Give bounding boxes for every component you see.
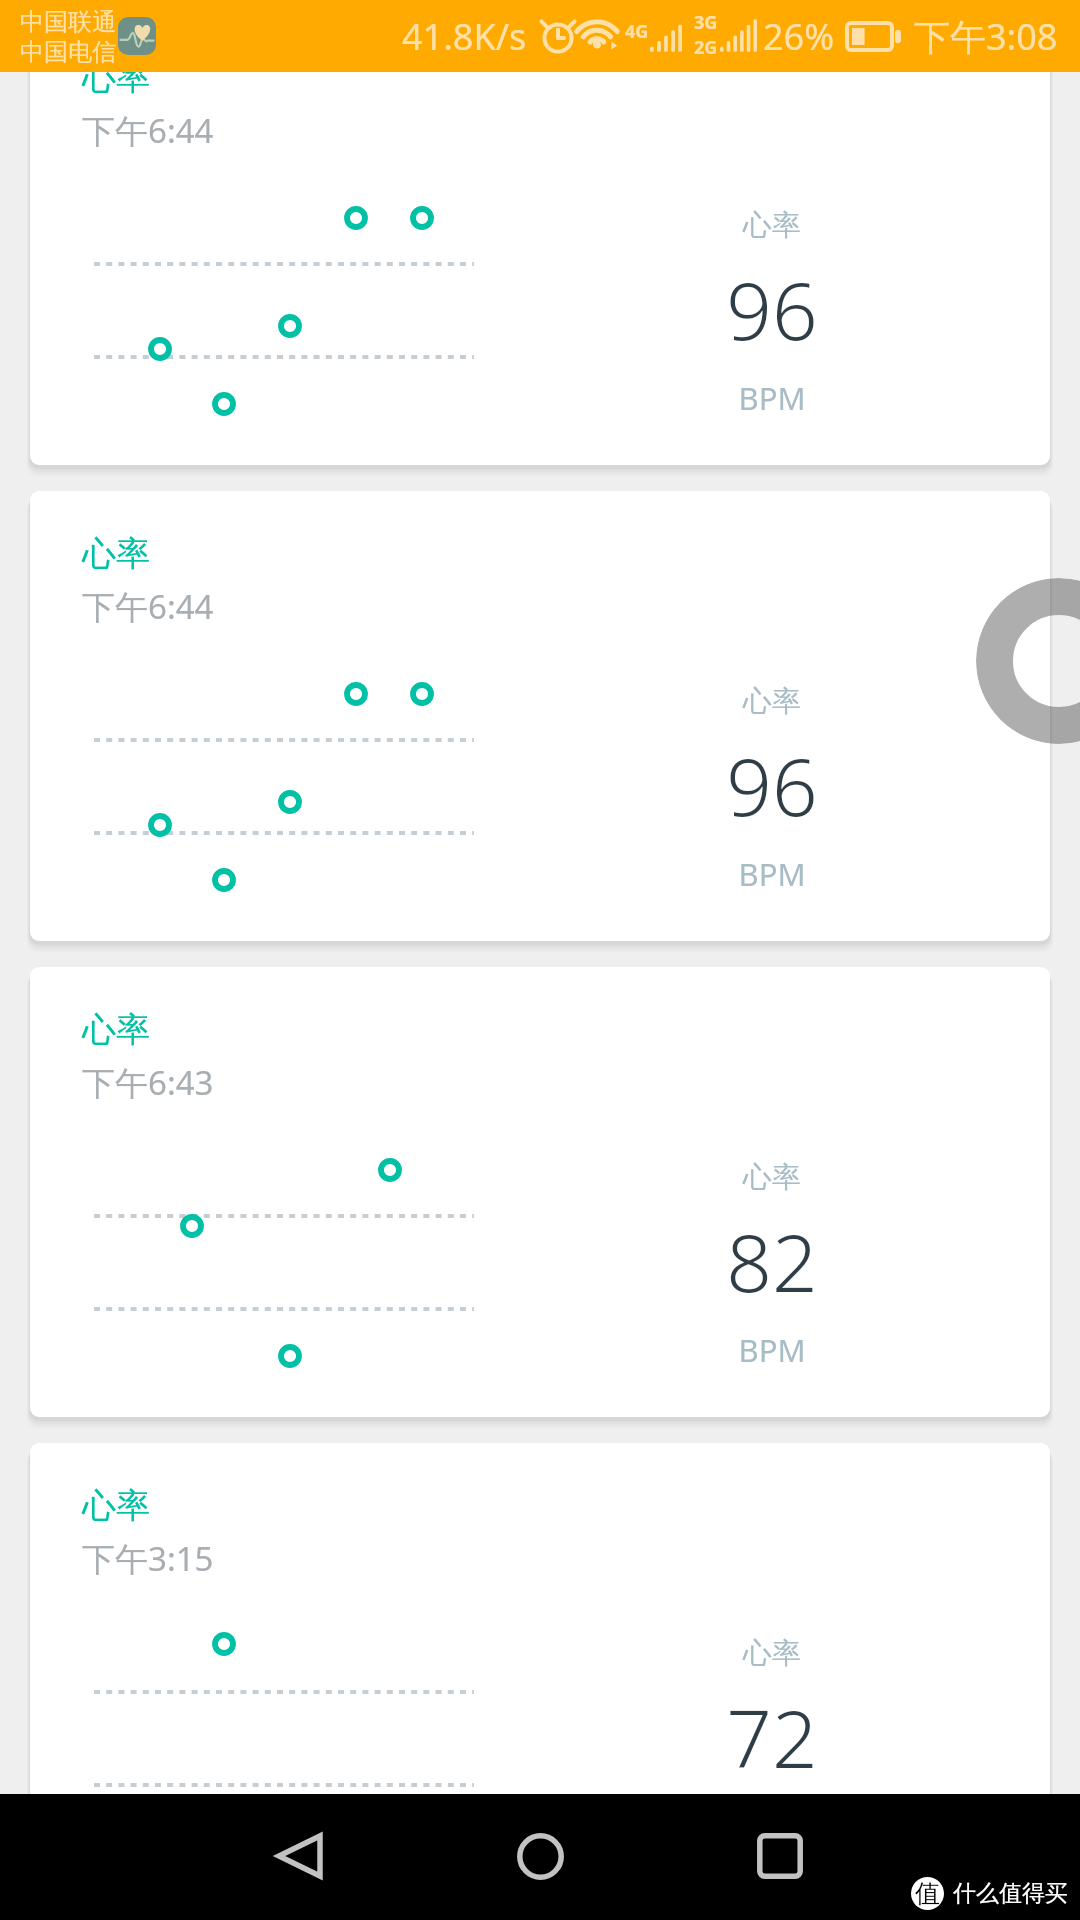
staticText: 3G bbox=[694, 10, 718, 35]
button[interactable]: Refresh bbox=[976, 578, 1080, 744]
staticText: 下午3:15 bbox=[82, 1536, 214, 1581]
staticText: BPM bbox=[572, 377, 972, 419]
staticText: 中国联通 bbox=[20, 7, 116, 37]
staticText: 41.8K/s bbox=[402, 12, 527, 61]
button[interactable]: 心率 bbox=[30, 1443, 1050, 1893]
staticText: 心率 bbox=[82, 56, 150, 99]
staticText: BPM bbox=[572, 1805, 972, 1847]
staticText: 心率 bbox=[572, 1635, 972, 1672]
button[interactable]: Recents bbox=[720, 1793, 840, 1919]
staticText: BPM bbox=[572, 1329, 972, 1371]
staticText: 中国电信 bbox=[20, 37, 116, 67]
staticText: 下午6:44 bbox=[82, 108, 214, 153]
button[interactable]: Home bbox=[480, 1793, 600, 1919]
staticText: 26% bbox=[763, 12, 835, 61]
staticText: 96 bbox=[572, 254, 972, 363]
staticText: 什么值得买 bbox=[953, 1879, 1068, 1908]
button[interactable]: 心率 bbox=[30, 15, 1050, 465]
staticText: 心率 bbox=[572, 1159, 972, 1196]
staticText: 82 bbox=[572, 1206, 972, 1315]
staticText: 72 bbox=[572, 1682, 972, 1791]
staticText: 96 bbox=[572, 730, 972, 839]
staticText: 心率 bbox=[572, 683, 972, 720]
button[interactable]: 心率 bbox=[30, 967, 1050, 1417]
button[interactable]: 心率 bbox=[30, 491, 1050, 941]
staticText: 2G bbox=[694, 35, 718, 60]
staticText: 心率 bbox=[82, 1484, 150, 1527]
staticText: 4G bbox=[625, 19, 649, 44]
staticText: 心率 bbox=[572, 207, 972, 244]
staticText: 值 bbox=[915, 1878, 940, 1909]
staticText: BPM bbox=[572, 853, 972, 895]
staticText: 心率 bbox=[82, 532, 150, 575]
staticText: 下午6:43 bbox=[82, 1060, 214, 1105]
staticText: 心率 bbox=[82, 1008, 150, 1051]
staticText: 下午3:08 bbox=[914, 12, 1058, 61]
staticText: 下午6:44 bbox=[82, 584, 214, 629]
button[interactable]: Back bbox=[239, 1793, 359, 1919]
